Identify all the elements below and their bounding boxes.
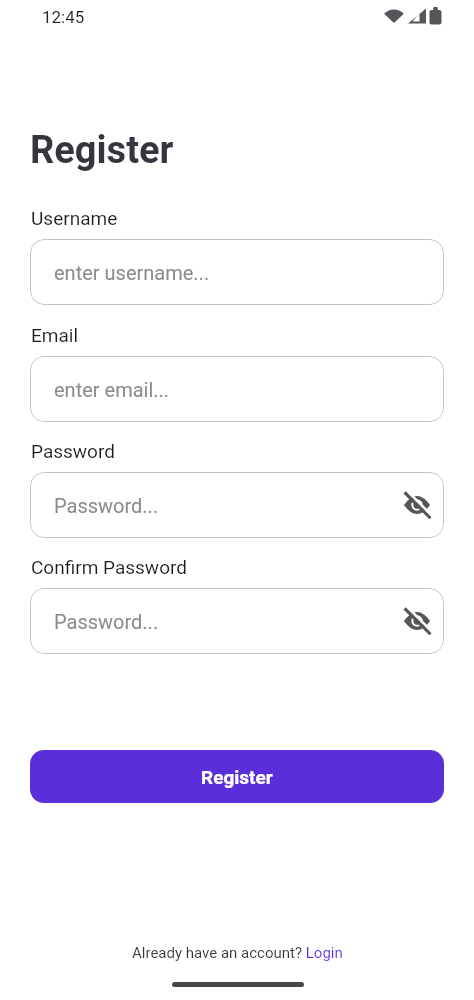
button[interactable]	[402, 490, 432, 520]
staticText: Password	[31, 440, 115, 462]
staticText: Username	[31, 207, 118, 229]
button[interactable]: Password...	[30, 472, 444, 538]
staticText: Password...	[54, 494, 159, 517]
staticText: Password...	[54, 610, 159, 633]
button[interactable]: Register	[30, 750, 444, 803]
button[interactable]: Already have an account? Login	[132, 944, 343, 962]
staticText: enter email...	[54, 378, 170, 401]
staticText: 12:45	[42, 7, 85, 27]
staticText: Email	[31, 324, 79, 346]
staticText: Register	[30, 128, 174, 173]
button[interactable]	[402, 606, 432, 636]
button[interactable]: Password...	[30, 588, 444, 654]
button[interactable]: enter username...	[30, 239, 444, 305]
staticText: Register	[201, 766, 273, 788]
staticText: Confirm Password	[31, 556, 187, 578]
staticText: enter username...	[54, 261, 210, 284]
button[interactable]: enter email...	[30, 356, 444, 422]
